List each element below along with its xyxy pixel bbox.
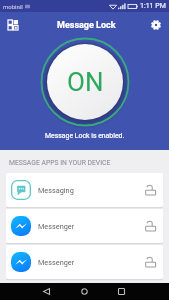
staticText: Messaging <box>38 186 74 195</box>
button[interactable]: Messenger <box>6 245 163 279</box>
staticText: Messenger <box>38 258 75 267</box>
staticText: ON <box>67 67 104 97</box>
staticText: Message Lock <box>57 20 116 31</box>
button[interactable]: Lock Messenger <box>140 216 160 236</box>
button[interactable]: Messaging <box>6 173 163 207</box>
staticText: Messenger <box>38 222 75 231</box>
button[interactable]: Messenger <box>6 209 163 243</box>
staticText: MESSAGE APPS IN YOUR DEVICE <box>9 159 111 167</box>
button[interactable]: Back <box>38 283 55 300</box>
staticText: Message Lock is enabled. <box>45 132 125 140</box>
button[interactable]: Recents <box>113 283 130 300</box>
button[interactable]: Toggle message lock <box>38 35 132 129</box>
staticText: mobinil <box>3 3 23 10</box>
staticText: 1:11 PM <box>140 2 166 10</box>
button[interactable]: Apps <box>1 13 25 37</box>
button[interactable]: Home <box>76 283 93 300</box>
button[interactable]: Lock Messenger <box>140 252 160 272</box>
button[interactable]: Lock Messaging <box>140 180 160 200</box>
button[interactable]: Settings <box>145 14 167 36</box>
